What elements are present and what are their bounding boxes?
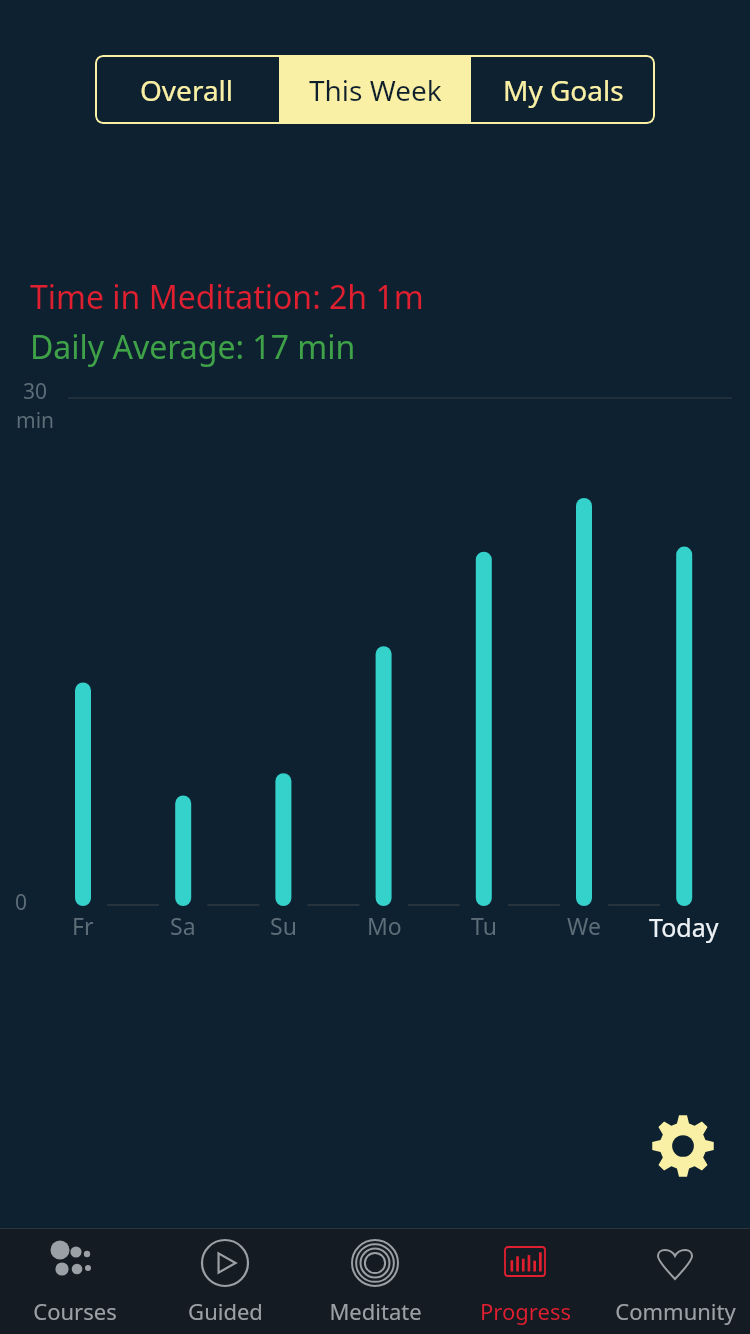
staticText: Progress [480, 1296, 571, 1326]
button[interactable]: Settings [650, 1113, 716, 1179]
button[interactable]: Guided [150, 1229, 300, 1334]
staticText: 0 [15, 888, 28, 917]
staticText: Community [615, 1296, 736, 1326]
button[interactable]: Meditate [300, 1229, 450, 1334]
staticText: Guided [188, 1296, 263, 1326]
staticText: Mo [367, 910, 402, 941]
button[interactable]: Overall [95, 55, 279, 124]
staticText: Daily Average: 17 min [30, 325, 356, 369]
staticText: Courses [33, 1296, 117, 1326]
button[interactable]: Courses [0, 1229, 150, 1334]
button[interactable]: This Week [279, 55, 471, 124]
button[interactable]: My Goals [471, 55, 655, 124]
staticText: min [16, 406, 55, 435]
staticText: My Goals [503, 71, 624, 109]
staticText: Su [270, 910, 297, 941]
staticText: We [567, 910, 601, 941]
staticText: Overall [140, 71, 234, 109]
staticText: Sa [170, 910, 196, 941]
staticText: Fr [72, 910, 94, 941]
staticText: Today [649, 910, 719, 944]
button[interactable]: Progress [450, 1229, 600, 1334]
button[interactable]: Community [600, 1229, 750, 1334]
staticText: This Week [309, 71, 442, 109]
staticText: Time in Meditation: 2h 1m [30, 275, 424, 319]
staticText: Tu [471, 910, 497, 941]
staticText: 30 [23, 377, 48, 406]
staticText: Meditate [329, 1296, 422, 1326]
